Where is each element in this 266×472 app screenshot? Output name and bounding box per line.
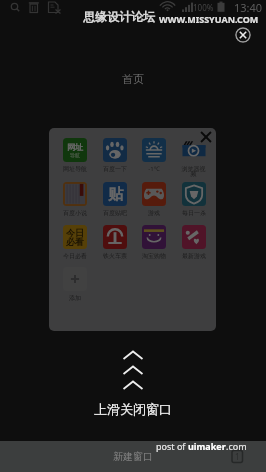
button[interactable]: 百度小说 — [62, 182, 87, 217]
staticText: -1℃ — [148, 165, 160, 173]
staticText: uimaker — [188, 440, 226, 452]
button[interactable]: 游戏 — [141, 182, 166, 217]
button[interactable]: -1℃ — [141, 138, 166, 173]
staticText: 淘宝购物 — [142, 252, 166, 260]
button[interactable]: 百度一下 — [102, 138, 127, 173]
staticText: 游戏 — [148, 209, 160, 217]
staticText: 百度小说 — [63, 209, 87, 217]
button[interactable]: 新建窗口 — [113, 450, 153, 463]
staticText: 浏览器视频 — [181, 165, 206, 178]
staticText: 1 — [235, 451, 240, 462]
staticText: WWW.MISSYUAN.COM — [159, 13, 259, 25]
staticText: 今日 必看 — [66, 227, 84, 248]
button[interactable]: Tabs — [231, 449, 246, 464]
staticText: 添加 — [69, 294, 81, 302]
staticText: 导航 — [70, 152, 80, 158]
button[interactable]: 每日一杀 — [181, 182, 206, 217]
button[interactable]: Add shortcut — [62, 267, 87, 302]
staticText: 首页 — [122, 72, 144, 86]
staticText: post of — [156, 440, 188, 452]
staticText: 今日必看 — [63, 252, 87, 260]
staticText: 每日一杀 — [182, 209, 206, 217]
button[interactable]: 淘宝购物 — [141, 225, 166, 260]
staticText: 100% — [193, 2, 214, 13]
staticText: 思缘设计论坛 — [83, 9, 155, 24]
staticText: 贴 — [108, 185, 123, 204]
button[interactable]: 网址 — [62, 138, 87, 173]
staticText: 百度贴吧 — [103, 209, 127, 217]
button[interactable]: 浏览器视频 — [181, 138, 206, 178]
button[interactable]: 最新游戏 — [181, 225, 206, 260]
button[interactable]: Close panel — [198, 129, 214, 145]
staticText: 上滑关闭窗口 — [94, 401, 172, 417]
staticText: 最新游戏 — [182, 252, 206, 260]
button[interactable]: Close — [235, 27, 251, 43]
staticText: 新建窗口 — [113, 450, 153, 463]
staticText: 铁火车票 — [103, 252, 127, 260]
button[interactable]: 今日 必看 — [62, 225, 87, 260]
staticText: .com — [226, 440, 247, 452]
staticText: 网址导航 — [63, 165, 87, 173]
staticText: 百度一下 — [103, 165, 127, 173]
staticText: 13:40 — [234, 0, 263, 14]
button[interactable]: 铁火车票 — [102, 225, 127, 260]
staticText: 网址 — [67, 142, 83, 152]
button[interactable]: 贴 — [102, 182, 127, 217]
